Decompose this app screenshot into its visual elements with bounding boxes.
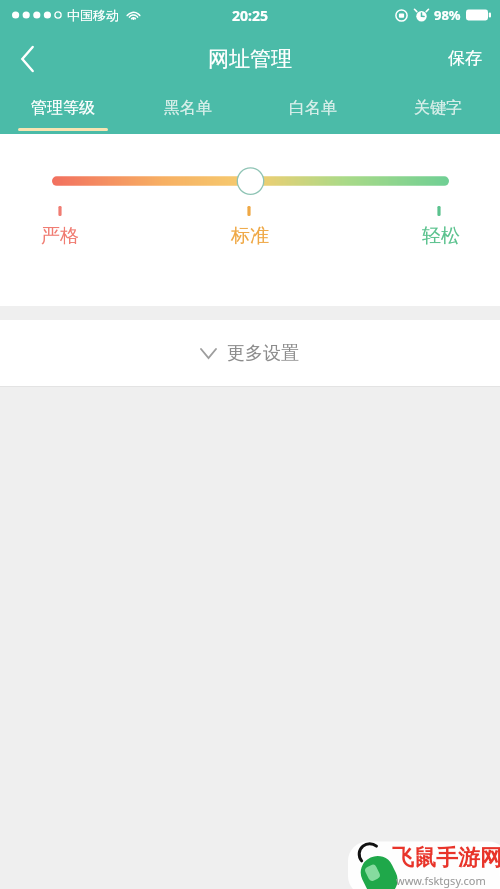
button[interactable]: 严格 (30, 224, 90, 248)
staticText: 白名单 (289, 98, 337, 118)
staticText: 黑名单 (164, 98, 212, 118)
button[interactable]: 轻松 (411, 224, 471, 248)
button[interactable]: 黑名单 (125, 87, 250, 134)
staticText: 20:25 (232, 6, 268, 25)
button[interactable]: 白名单 (250, 87, 375, 134)
staticText: 保存 (448, 48, 482, 69)
button[interactable]: 标准 (220, 224, 280, 248)
button[interactable]: 保存 (430, 30, 500, 87)
button[interactable]: Back (0, 30, 54, 87)
staticText: 关键字 (414, 98, 462, 118)
staticText: 管理等级 (31, 98, 95, 118)
button[interactable]: 更多设置 (0, 320, 500, 386)
staticText: 标准 (231, 224, 269, 248)
staticText: 轻松 (422, 224, 460, 248)
staticText: 严格 (41, 224, 79, 248)
staticText: www.fsktgsy.com (396, 873, 486, 888)
staticText: 飞鼠手游网 (392, 844, 500, 872)
button[interactable]: 关键字 (375, 87, 500, 134)
staticText: 98% (434, 6, 461, 24)
staticText: 更多设置 (227, 342, 299, 365)
staticText: 中国移动 (67, 7, 119, 23)
staticText: 网址管理 (208, 46, 292, 72)
button[interactable]: 管理等级 (0, 87, 125, 134)
